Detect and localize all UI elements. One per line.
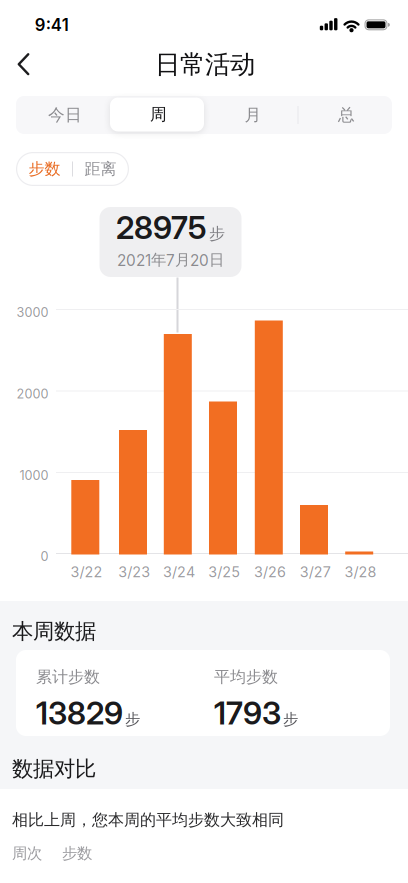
button[interactable]: 今日: [16, 96, 110, 134]
staticText: 步: [209, 223, 225, 244]
staticText: 周次: [12, 844, 42, 863]
staticText: 3/23: [118, 563, 150, 581]
staticText: 3/25: [208, 563, 240, 581]
staticText: 步数: [28, 159, 60, 179]
button[interactable]: 3/22: [71, 480, 99, 554]
staticText: 13829: [36, 694, 123, 732]
button[interactable]: 距离: [72, 152, 128, 186]
staticText: 累计步数: [36, 667, 100, 687]
staticText: 3/28: [344, 563, 376, 581]
button[interactable]: 周: [110, 97, 204, 131]
button[interactable]: Back: [5, 46, 41, 82]
staticText: 1000: [19, 468, 48, 483]
button[interactable]: 3/26: [255, 320, 283, 554]
staticText: 2000: [16, 386, 48, 402]
staticText: 3/24: [163, 563, 195, 581]
button[interactable]: 3/28: [345, 551, 373, 554]
button[interactable]: 步数: [16, 152, 72, 186]
button[interactable]: 月: [204, 96, 298, 134]
staticText: 步: [125, 710, 140, 729]
staticText: 步: [283, 710, 298, 729]
staticText: 3/27: [300, 563, 331, 581]
button[interactable]: 总: [298, 96, 392, 134]
staticText: 日常活动: [155, 49, 255, 80]
staticText: 距离: [84, 159, 116, 179]
staticText: 相比上周，您本周的平均步数大致相同: [12, 810, 284, 830]
staticText: 9:41: [35, 15, 69, 35]
staticText: 1793: [214, 694, 281, 732]
staticText: 周: [150, 104, 167, 125]
staticText: 本周数据: [12, 618, 96, 645]
staticText: 月: [244, 104, 261, 125]
staticText: 步数: [62, 844, 92, 863]
staticText: 数据对比: [12, 756, 96, 782]
staticText: 3/22: [71, 563, 103, 581]
button[interactable]: 3/24: [164, 334, 192, 554]
staticText: 总: [338, 104, 355, 125]
staticText: 0: [40, 549, 48, 564]
staticText: 平均步数: [214, 667, 278, 687]
staticText: 3/26: [254, 563, 286, 581]
staticText: 2021年7月20日: [117, 250, 224, 270]
staticText: 3000: [16, 305, 48, 320]
staticText: 28975: [116, 208, 207, 246]
staticText: 今日: [48, 104, 82, 125]
